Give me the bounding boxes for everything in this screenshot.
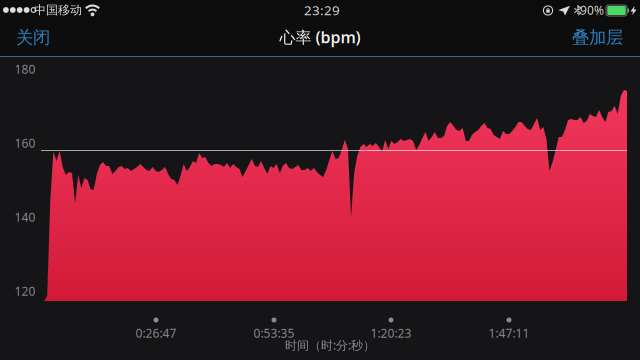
staticText: 1:20:23 [370,325,411,341]
button[interactable]: 关闭 [16,20,64,54]
button[interactable]: 叠加层 [561,20,623,54]
staticText: 时间（时:分:秒） [285,337,375,353]
staticText: 120 [14,283,35,299]
staticText: 心率 (bpm) [279,26,360,48]
staticText: 180 [14,61,35,77]
staticText: 关闭 [16,27,50,48]
staticText: 1:47:11 [488,325,529,341]
staticText: 0:53:35 [253,325,294,341]
staticText: 140 [14,209,35,225]
staticText: 0:26:47 [135,325,176,341]
staticText: 中国移动 [34,3,82,17]
staticText: 160 [14,135,35,151]
staticText: 叠加层 [572,27,623,48]
staticText: 23:29 [304,1,340,19]
staticText: 90% [580,2,604,18]
